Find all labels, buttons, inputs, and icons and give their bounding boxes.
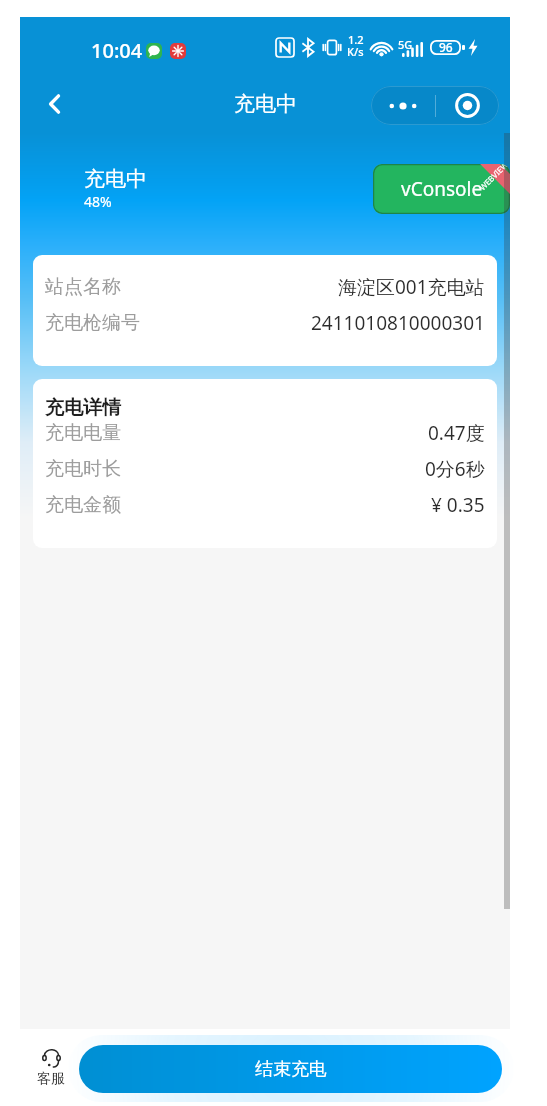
- button[interactable]: 客服: [22, 1049, 80, 1088]
- button[interactable]: More options: [371, 86, 499, 125]
- button[interactable]: vConsole: [373, 164, 510, 214]
- staticText: 96: [439, 39, 453, 54]
- staticText: 充电电量: [45, 421, 121, 445]
- staticText: 充电枪编号: [45, 311, 140, 335]
- staticText: 站点名称: [45, 275, 121, 299]
- staticText: 5G: [398, 37, 413, 52]
- staticText: ¥ 0.35: [431, 492, 485, 518]
- staticText: K/s: [347, 44, 364, 59]
- staticText: 充电中: [234, 91, 297, 117]
- staticText: WEBVIEW: [476, 164, 510, 192]
- staticText: 充电金额: [45, 493, 121, 517]
- staticText: 充电中: [84, 166, 147, 192]
- staticText: 0.47度: [428, 420, 485, 446]
- staticText: 充电时长: [45, 457, 121, 481]
- staticText: vConsole: [401, 176, 483, 202]
- staticText: 结束充电: [255, 1058, 327, 1081]
- staticText: 客服: [37, 1070, 65, 1088]
- staticText: 海淀区001充电站: [338, 274, 485, 300]
- staticText: 充电详情: [45, 396, 121, 420]
- staticText: 10:04: [91, 37, 143, 64]
- staticText: 0分6秒: [425, 456, 485, 482]
- button[interactable]: Back: [34, 83, 76, 125]
- staticText: 2411010810000301: [311, 310, 485, 336]
- staticText: 48%: [84, 192, 112, 211]
- button[interactable]: 结束充电: [79, 1045, 502, 1093]
- staticText: 1.2: [348, 32, 364, 47]
